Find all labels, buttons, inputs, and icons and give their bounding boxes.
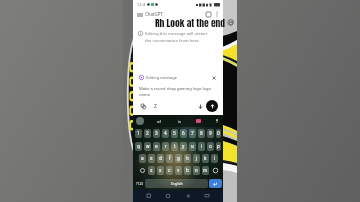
button[interactable]: c xyxy=(166,166,173,175)
button[interactable]: Send xyxy=(206,100,218,112)
button[interactable]: w xyxy=(144,142,151,151)
staticText: d xyxy=(159,156,162,162)
button[interactable]: e xyxy=(153,142,160,151)
button[interactable]: s xyxy=(148,154,155,163)
button[interactable]: Attach file xyxy=(139,102,148,111)
staticText: Rh Look at the end xyxy=(155,16,226,30)
staticText: 9 xyxy=(209,131,212,137)
button[interactable]: p xyxy=(216,142,221,151)
staticText: u xyxy=(191,144,194,150)
staticText: b xyxy=(186,168,189,174)
button[interactable]: z xyxy=(148,166,155,175)
staticText: of xyxy=(157,119,161,124)
button[interactable]: y xyxy=(180,142,187,151)
staticText: Make a round shap gaming logo logo name xyxy=(139,86,221,97)
button[interactable]: Home xyxy=(164,192,172,200)
staticText: 😅 xyxy=(227,19,235,27)
staticText: r xyxy=(165,144,167,150)
button[interactable]: b xyxy=(184,166,191,175)
button[interactable]: 1 xyxy=(135,129,142,138)
button[interactable]: v xyxy=(175,166,182,175)
staticText: v xyxy=(177,168,180,174)
button[interactable]: f xyxy=(166,154,173,163)
button[interactable]: 5 xyxy=(171,129,178,138)
button[interactable]: ?123 xyxy=(134,179,145,188)
button[interactable]: Tools xyxy=(151,102,160,111)
button[interactable]: Dictate xyxy=(196,102,205,111)
button[interactable]: Menu xyxy=(135,10,144,19)
button[interactable]: 9 xyxy=(207,129,214,138)
staticText: z xyxy=(150,168,153,174)
staticText: c xyxy=(168,168,171,174)
button[interactable]: Cancel editing xyxy=(210,74,217,81)
button[interactable]: 6 xyxy=(180,129,187,138)
staticText: e xyxy=(155,144,158,150)
staticText: Editing this message will restart the co… xyxy=(145,31,208,43)
button[interactable]: r xyxy=(162,142,169,151)
staticText: 3 xyxy=(155,131,158,137)
button[interactable]: d xyxy=(157,154,164,163)
staticText: 6 xyxy=(182,131,185,137)
button[interactable]: o xyxy=(207,142,214,151)
staticText: is xyxy=(178,119,181,124)
staticText: a xyxy=(141,156,144,162)
staticText: 12:4 xyxy=(137,2,145,7)
staticText: y xyxy=(182,144,185,150)
staticText: ?123 xyxy=(136,181,144,186)
button[interactable]: Shift xyxy=(137,165,147,175)
button[interactable]: Back xyxy=(184,192,192,200)
button[interactable]: Hide keyboard xyxy=(203,192,211,200)
staticText: ↵ xyxy=(213,181,218,187)
button[interactable]: x xyxy=(157,166,164,175)
button[interactable]: 0 xyxy=(216,129,221,138)
staticText: l xyxy=(214,156,216,162)
staticText: g xyxy=(177,156,180,162)
button[interactable]: n xyxy=(193,166,200,175)
button[interactable]: Backspace xyxy=(210,165,220,175)
staticText: i xyxy=(201,144,203,150)
staticText: t xyxy=(174,144,176,150)
staticText: q xyxy=(137,144,140,150)
staticText: ChatGPT xyxy=(145,11,163,17)
button[interactable]: u xyxy=(189,142,196,151)
button[interactable]: m xyxy=(202,166,209,175)
button[interactable]: l xyxy=(211,154,218,163)
button[interactable]: 4 xyxy=(162,129,169,138)
staticText: 2 xyxy=(146,131,149,137)
staticText: English xyxy=(171,181,183,186)
button[interactable]: Keyboard settings xyxy=(136,117,144,125)
button[interactable]: Recents xyxy=(145,192,153,200)
button[interactable]: 7 xyxy=(189,129,196,138)
staticText: m xyxy=(203,168,208,174)
button[interactable]: New chat xyxy=(204,10,213,19)
staticText: w xyxy=(146,144,150,150)
button[interactable]: Enter xyxy=(209,179,222,188)
button[interactable]: Voice input xyxy=(214,118,220,124)
staticText: p xyxy=(217,144,220,150)
button[interactable]: h xyxy=(184,154,191,163)
staticText: j xyxy=(196,156,198,162)
staticText: n xyxy=(195,168,198,174)
staticText: 4 xyxy=(164,131,167,137)
staticText: k xyxy=(204,156,207,162)
button[interactable]: t xyxy=(171,142,178,151)
button[interactable]: q xyxy=(135,142,142,151)
staticText: 1 xyxy=(137,131,140,137)
button[interactable]: a xyxy=(139,154,146,163)
button[interactable]: i xyxy=(198,142,205,151)
staticText: 8 xyxy=(200,131,203,137)
staticText: x xyxy=(159,168,162,174)
staticText: Editing message xyxy=(146,75,177,80)
button[interactable]: 3 xyxy=(153,129,160,138)
staticText: s xyxy=(150,156,153,162)
button[interactable]: k xyxy=(202,154,209,163)
button[interactable]: 8 xyxy=(198,129,205,138)
staticText: 0 xyxy=(217,131,220,137)
button[interactable]: g xyxy=(175,154,182,163)
staticText: o xyxy=(209,144,212,150)
button[interactable]: English xyxy=(145,179,208,188)
button[interactable]: j xyxy=(193,154,200,163)
staticText: 7 xyxy=(191,131,194,137)
button[interactable]: More options xyxy=(213,10,221,18)
button[interactable]: 2 xyxy=(144,129,151,138)
